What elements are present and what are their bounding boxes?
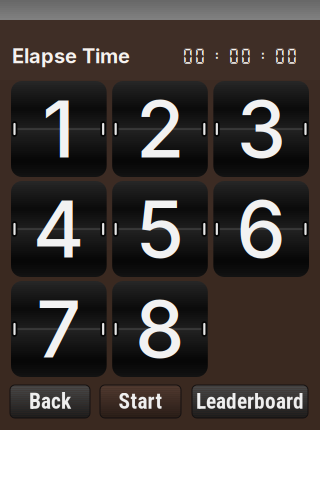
staticText: 6 bbox=[236, 181, 286, 277]
button[interactable]: Start bbox=[100, 385, 181, 418]
staticText: : bbox=[257, 46, 269, 65]
staticText: 8 bbox=[135, 281, 185, 377]
button[interactable]: Leaderboard bbox=[192, 385, 308, 418]
button[interactable]: 7 bbox=[11, 281, 107, 377]
button[interactable]: 1 bbox=[11, 81, 107, 177]
button[interactable]: Back bbox=[10, 385, 90, 418]
button[interactable]: 4 bbox=[11, 181, 107, 277]
staticText: Leaderboard bbox=[196, 389, 304, 414]
staticText: 1 bbox=[42, 81, 75, 177]
staticText: 2 bbox=[136, 81, 184, 177]
staticText: Start bbox=[118, 389, 162, 414]
button[interactable]: 5 bbox=[112, 181, 208, 277]
staticText: Elapse Time bbox=[12, 44, 130, 68]
button[interactable]: 6 bbox=[213, 181, 309, 277]
staticText: 00 bbox=[228, 46, 252, 65]
staticText: Back bbox=[29, 389, 71, 414]
staticText: : bbox=[211, 46, 223, 65]
button[interactable]: 8 bbox=[112, 281, 208, 377]
staticText: 5 bbox=[135, 181, 184, 277]
staticText: 3 bbox=[237, 81, 286, 177]
staticText: 7 bbox=[36, 281, 81, 377]
staticText: 00 bbox=[274, 46, 298, 65]
button[interactable]: 2 bbox=[112, 81, 208, 177]
button[interactable]: 3 bbox=[213, 81, 309, 177]
staticText: 4 bbox=[33, 181, 85, 277]
staticText: 00 bbox=[182, 46, 206, 65]
